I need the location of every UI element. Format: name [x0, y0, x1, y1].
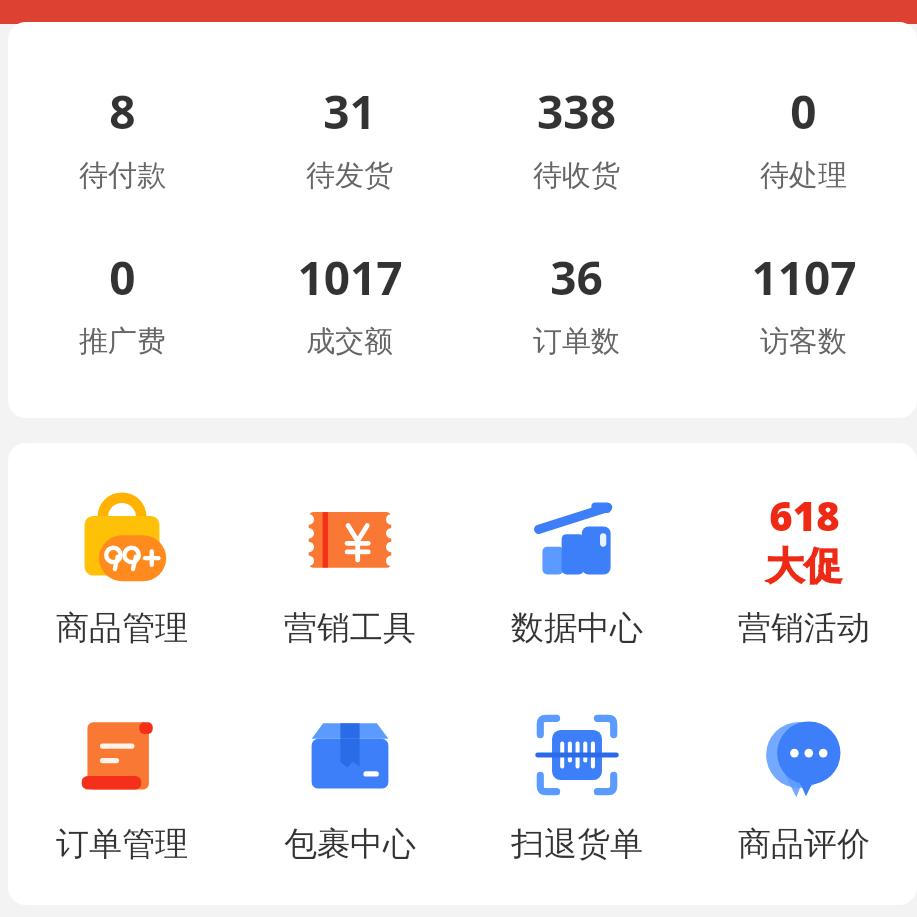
staticText: 大促 [766, 542, 842, 590]
staticText: 待收货 [533, 157, 620, 194]
staticText: 1017 [297, 246, 403, 309]
button[interactable]: 338 [463, 76, 690, 198]
staticText: 1107 [751, 246, 857, 309]
staticText: 618 [769, 488, 840, 542]
button[interactable]: 扫退货单 [463, 695, 690, 869]
other: 扫退货单 [529, 707, 625, 803]
button[interactable]: 0 [8, 242, 236, 364]
staticText: 数据中心 [511, 607, 643, 649]
button[interactable]: 包裹中心 [236, 695, 463, 869]
other: 订单管理 [74, 707, 170, 803]
button[interactable]: 营销工具 [236, 479, 463, 653]
other: 营销活动 [750, 485, 858, 593]
other: 营销工具 [302, 491, 398, 587]
staticText: 36 [550, 246, 603, 309]
other: 数据中心 [529, 491, 625, 587]
staticText: 包裹中心 [284, 823, 416, 865]
button[interactable]: 数据中心 [463, 479, 690, 653]
button[interactable]: 1017 [236, 242, 463, 364]
staticText: 待发货 [306, 157, 393, 194]
staticText: 0 [790, 80, 817, 143]
staticText: 推广费 [79, 323, 166, 360]
button[interactable]: 31 [236, 76, 463, 198]
button[interactable]: 36 [463, 242, 690, 364]
button[interactable]: 商品评价 [690, 695, 917, 869]
button[interactable]: 商品管理 [8, 479, 236, 653]
other: 包裹中心 [302, 707, 398, 803]
staticText: 扫退货单 [511, 823, 643, 865]
staticText: 商品管理 [56, 607, 188, 649]
button[interactable]: 1107 [690, 242, 917, 364]
staticText: 338 [537, 80, 616, 143]
staticText: 待付款 [79, 157, 166, 194]
staticText: 31 [323, 80, 376, 143]
staticText: 成交额 [306, 323, 393, 360]
button[interactable]: 订单管理 [8, 695, 236, 869]
staticText: 访客数 [760, 323, 847, 360]
staticText: 营销工具 [284, 607, 416, 649]
button[interactable]: 8 [8, 76, 236, 198]
staticText: 8 [109, 80, 136, 143]
staticText: 商品评价 [738, 823, 870, 865]
staticText: 0 [109, 246, 136, 309]
staticText: 订单管理 [56, 823, 188, 865]
staticText: 订单数 [533, 323, 620, 360]
button[interactable]: 0 [690, 76, 917, 198]
staticText: 待处理 [760, 157, 847, 194]
button[interactable]: 营销活动 [690, 479, 917, 653]
staticText: 营销活动 [738, 607, 870, 649]
other: 商品管理 [74, 491, 170, 587]
other: 商品评价 [756, 707, 852, 803]
